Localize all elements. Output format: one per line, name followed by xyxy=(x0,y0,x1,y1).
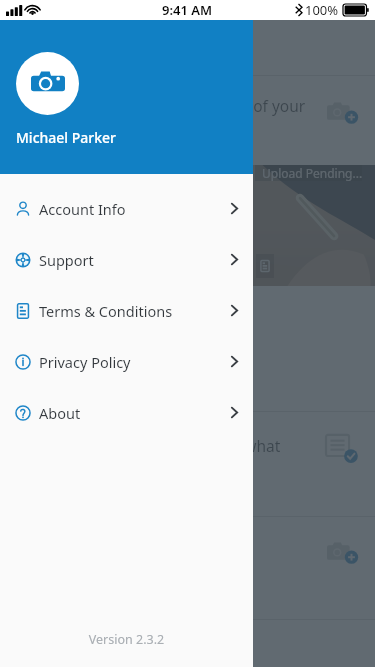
staticText: About xyxy=(39,403,81,423)
button[interactable]: Account Info xyxy=(0,183,253,234)
staticText: Account Info xyxy=(39,199,126,219)
staticText: Terms & Conditions xyxy=(39,301,173,321)
staticText: Version 2.3.2 xyxy=(0,631,253,648)
staticText: 9:41 AM xyxy=(162,1,213,19)
staticText: Add a photo of your xyxy=(160,95,306,116)
button[interactable]: Support xyxy=(0,234,253,285)
button[interactable]: About xyxy=(0,387,253,438)
staticText: 100% xyxy=(305,1,339,19)
staticText: Privacy Policy xyxy=(39,352,131,372)
button[interactable]: Privacy Policy xyxy=(0,336,253,387)
staticText: Upload Pending... xyxy=(262,165,362,181)
staticText: Support xyxy=(39,250,94,270)
staticText: Tell us what xyxy=(195,435,281,456)
button[interactable]: Terms & Conditions xyxy=(0,285,253,336)
staticText: Michael Parker xyxy=(16,128,117,147)
